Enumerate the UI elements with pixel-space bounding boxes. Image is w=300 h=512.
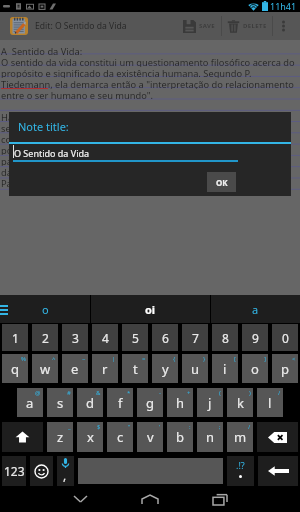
button[interactable]: Backspace — [257, 422, 298, 452]
button[interactable]: a — [17, 388, 43, 417]
staticText: % — [21, 355, 26, 363]
staticText: g — [146, 394, 154, 412]
button[interactable]: Voice input — [57, 456, 74, 486]
button[interactable]: Home — [115, 486, 185, 512]
button[interactable]: m — [227, 422, 253, 452]
staticText: r — [102, 360, 108, 378]
button[interactable]: Numbers and symbols — [2, 456, 26, 486]
button[interactable]: Enter — [258, 456, 298, 486]
staticText: : — [189, 423, 191, 431]
staticText: ] — [264, 355, 266, 363]
staticText: * — [127, 389, 131, 397]
button[interactable]: Shift — [2, 422, 43, 452]
staticText: f — [118, 394, 123, 412]
button[interactable]: r — [92, 354, 118, 383]
button[interactable]: f — [107, 388, 133, 417]
button[interactable]: n — [197, 422, 223, 452]
button[interactable]: i — [212, 354, 238, 383]
button[interactable]: k — [227, 388, 253, 417]
button[interactable]: s — [47, 388, 73, 417]
button[interactable]: a — [211, 295, 300, 323]
staticText: oi — [145, 302, 156, 317]
staticText: OK — [216, 177, 228, 188]
button[interactable]: 6 — [152, 324, 178, 351]
button[interactable]: 2 — [32, 324, 58, 351]
staticText: c — [117, 428, 124, 446]
staticText: - — [159, 389, 161, 397]
button[interactable]: Punctuation — [227, 456, 254, 486]
staticText: 3 — [72, 330, 79, 346]
button[interactable]: 1 — [2, 324, 28, 351]
button[interactable]: l — [257, 388, 283, 417]
staticText: b — [176, 428, 184, 446]
button[interactable]: u — [182, 354, 208, 383]
staticText: convertido em fundamentos de muitas cren… — [1, 133, 259, 144]
staticText: $ — [97, 423, 101, 431]
staticText: Tiedemann, ela demarca então a "interpre… — [1, 78, 294, 89]
staticText: / — [278, 389, 281, 397]
button[interactable]: oi — [91, 295, 210, 323]
staticText: 7 — [192, 330, 199, 346]
staticText: y — [162, 360, 169, 378]
button[interactable]: g — [137, 388, 163, 417]
staticText: p — [281, 360, 289, 378]
button[interactable]: SAVE — [178, 12, 221, 40]
staticText: 5 — [132, 330, 139, 346]
button[interactable]: 7 — [182, 324, 208, 351]
button[interactable]: More options — [273, 12, 293, 40]
button[interactable]: 0 — [272, 324, 298, 351]
staticText: Há inúmeras respostas propostas para ess… — [1, 111, 276, 122]
staticText: } — [203, 355, 206, 363]
button[interactable]: 3 — [62, 324, 88, 351]
staticText: Note title: — [18, 119, 69, 134]
staticText: Edit: O Sentido da Vida — [35, 20, 127, 32]
staticText: para que serve a vida? são questões que … — [1, 155, 248, 166]
staticText: ^ — [52, 355, 56, 363]
staticText: t — [133, 360, 138, 378]
staticText: DELETE — [243, 22, 267, 30]
staticText: ~ — [82, 355, 86, 363]
staticText: 1 — [12, 330, 19, 346]
button[interactable]: c — [107, 422, 133, 452]
button[interactable]: 9 — [242, 324, 268, 351]
button[interactable]: 5 — [122, 324, 148, 351]
button[interactable]: h — [167, 388, 193, 417]
button[interactable]: App icon — [0, 12, 38, 40]
staticText: 4 — [102, 330, 109, 346]
button[interactable]: z — [47, 422, 73, 452]
button[interactable]: d — [77, 388, 103, 417]
button[interactable]: Recent apps — [185, 486, 255, 512]
staticText: , — [63, 467, 67, 483]
button[interactable]: v — [137, 422, 163, 452]
staticText: = — [142, 355, 146, 363]
button[interactable]: q — [2, 354, 28, 383]
button[interactable]: t — [122, 354, 148, 383]
button[interactable]: e — [62, 354, 88, 383]
staticText: O Sentido da Vida — [14, 147, 90, 159]
staticText: o — [42, 302, 49, 317]
staticText: O sentido da vida constitui um questiona… — [1, 56, 295, 67]
button[interactable]: 8 — [212, 324, 238, 351]
staticText: { — [173, 355, 176, 363]
staticText: " — [128, 423, 131, 431]
staticText: l — [268, 394, 272, 412]
button[interactable]: j — [197, 388, 223, 417]
button[interactable]: y — [152, 354, 178, 383]
button[interactable]: 4 — [92, 324, 118, 351]
button[interactable]: p — [272, 354, 298, 383]
button[interactable]: o — [242, 354, 268, 383]
staticText: [ — [234, 355, 236, 363]
button[interactable]: o — [0, 295, 90, 323]
button[interactable]: w — [32, 354, 58, 383]
button[interactable]: Back — [45, 486, 115, 512]
staticText: 11h41 — [270, 0, 297, 12]
button[interactable]: OK — [207, 172, 236, 192]
button[interactable]: x — [77, 422, 103, 452]
button[interactable]: b — [167, 422, 193, 452]
staticText: d — [86, 394, 94, 412]
staticText: 8 — [222, 330, 229, 346]
button[interactable]: DELETE — [222, 12, 272, 40]
staticText: setores diversos da cultura e da filosof… — [1, 122, 278, 133]
button[interactable]: Emoji — [30, 456, 53, 486]
